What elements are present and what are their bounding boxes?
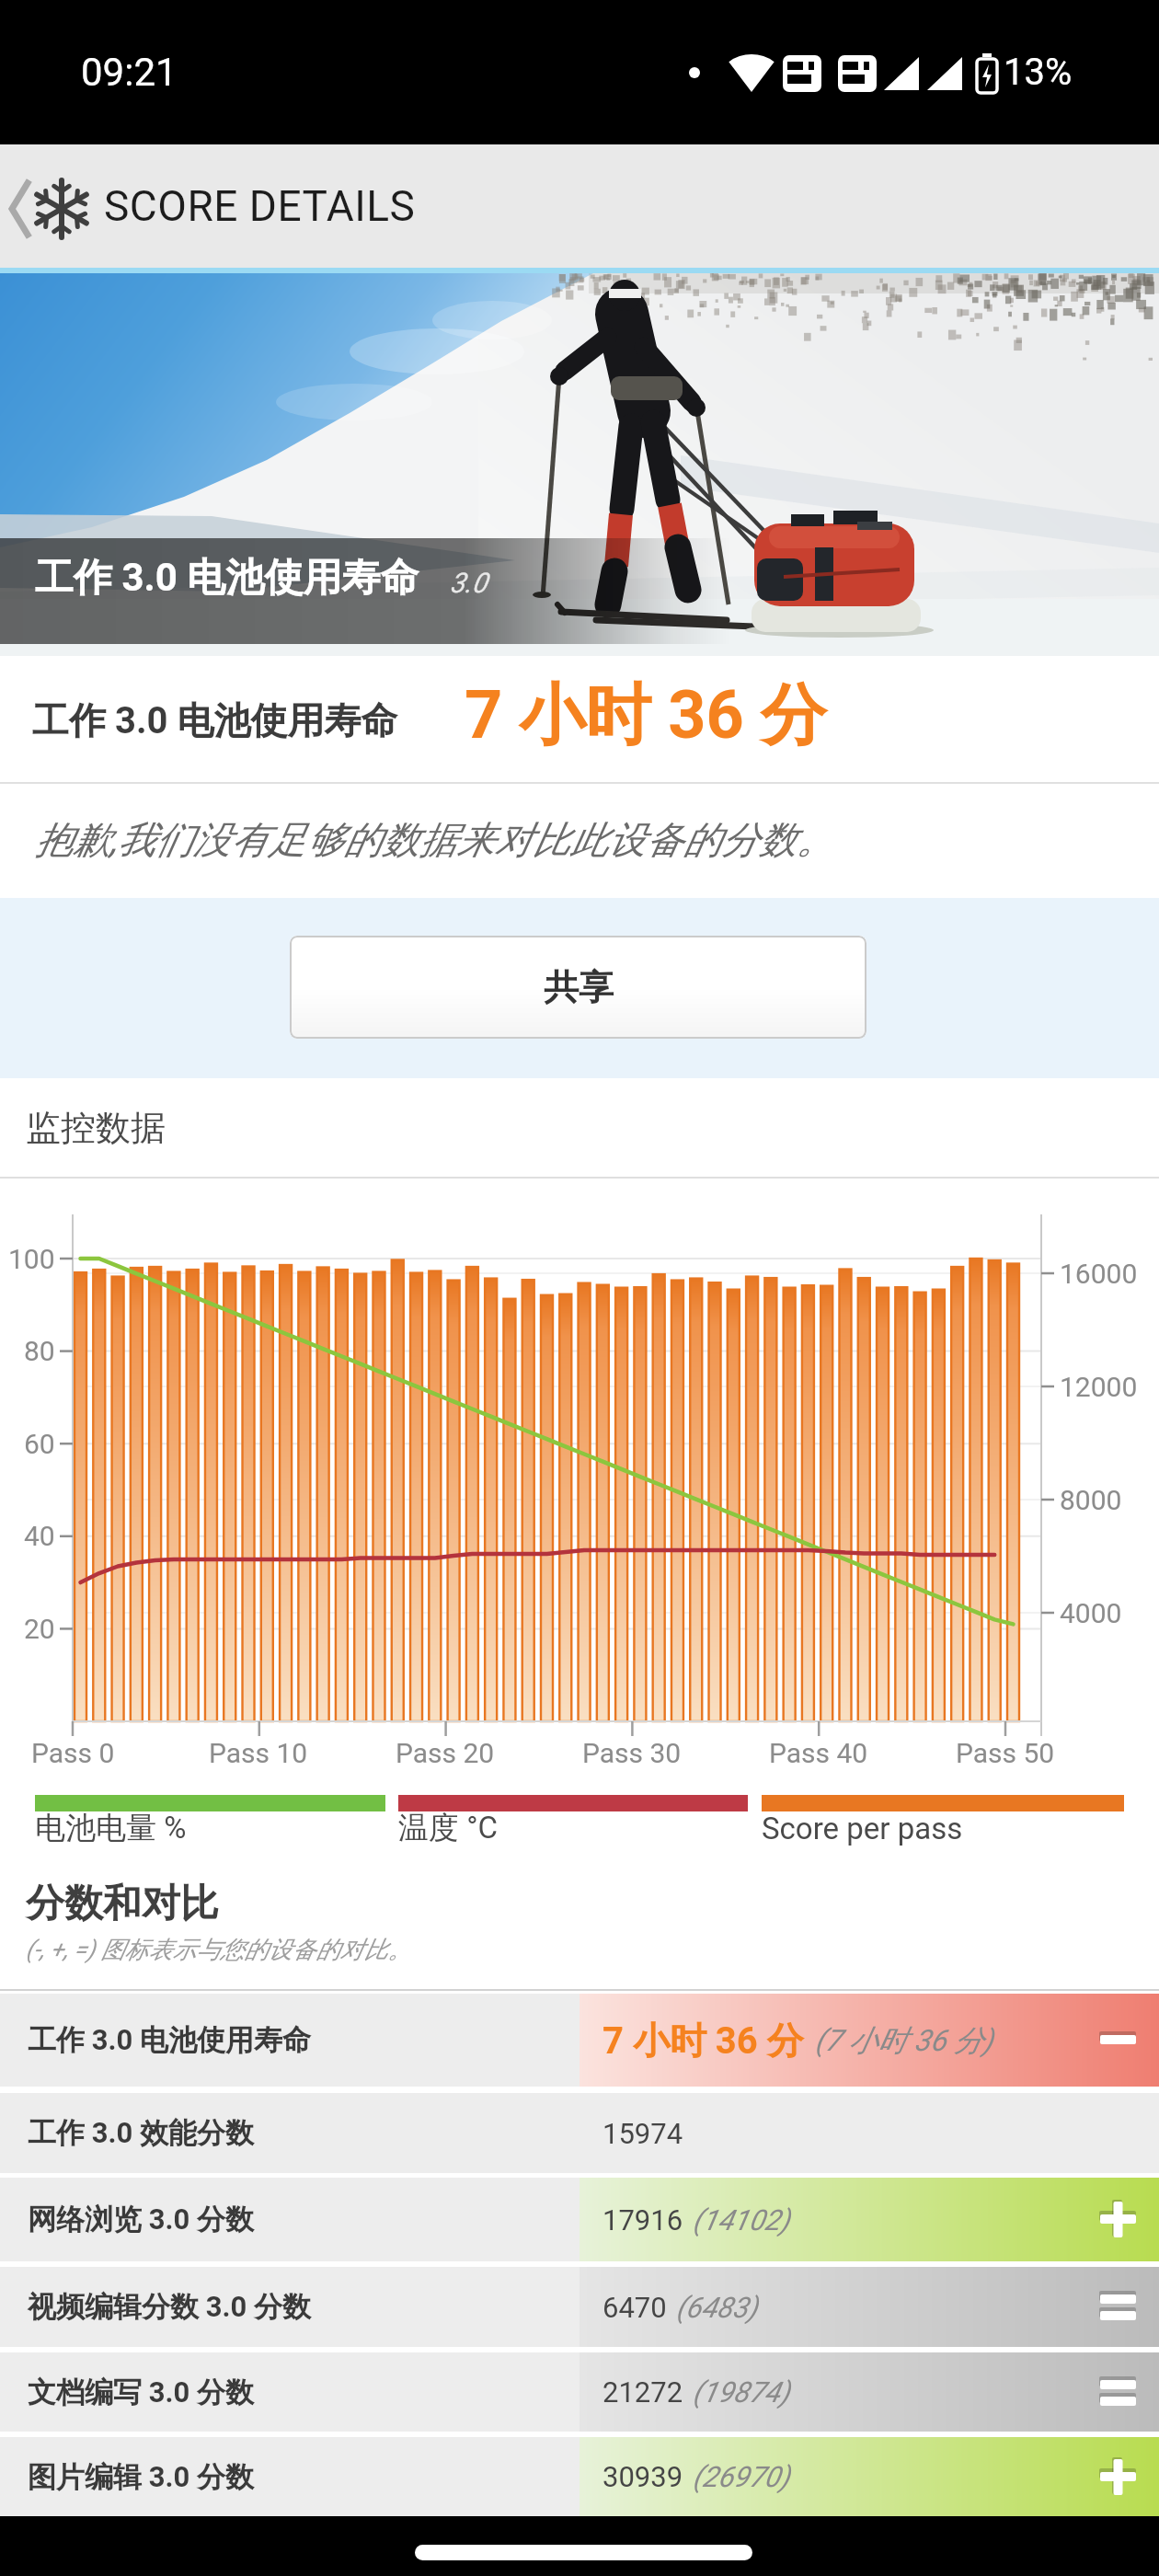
staticText: SCORE DETAILS xyxy=(104,181,416,231)
staticText: (14102) xyxy=(693,2203,790,2237)
staticText: 30939 xyxy=(602,2460,683,2493)
staticText: 40 xyxy=(24,1520,55,1552)
button[interactable] xyxy=(0,2352,1159,2432)
staticText: 80 xyxy=(24,1335,55,1367)
staticText: 视频编辑分数 3.0 分数 xyxy=(28,2289,312,2325)
staticText: 7 小时 36 分 xyxy=(465,674,827,758)
staticText: 分数和对比 xyxy=(26,1880,219,1928)
staticText: 图片编辑 3.0 分数 xyxy=(28,2459,255,2495)
staticText: 15974 xyxy=(602,2117,683,2150)
staticText: 21272 xyxy=(602,2375,683,2409)
staticText: 文档编写 3.0 分数 xyxy=(28,2375,255,2410)
staticText: Pass 20 xyxy=(396,1737,495,1769)
staticText: 工作 3.0 效能分数 xyxy=(28,2115,255,2151)
staticText: 工作 3.0 电池使用寿命 xyxy=(35,554,419,603)
staticText: 20 xyxy=(24,1613,55,1645)
button[interactable] xyxy=(0,1994,1159,2087)
staticText: 6470 xyxy=(602,2291,667,2324)
staticText: Pass 10 xyxy=(209,1737,308,1769)
staticText: 4000 xyxy=(1060,1597,1122,1629)
staticText: 电池电量 % xyxy=(35,1809,187,1847)
staticText: 温度 °C xyxy=(398,1809,498,1847)
staticText: Pass 50 xyxy=(956,1737,1055,1769)
staticText: 7 小时 36 分 xyxy=(602,2018,804,2064)
staticText: Pass 0 xyxy=(31,1737,115,1769)
staticText: Score per pass xyxy=(762,1811,963,1846)
staticText: Pass 30 xyxy=(582,1737,682,1769)
staticText: 13% xyxy=(1004,51,1073,94)
button[interactable] xyxy=(0,2437,1159,2516)
staticText: 8000 xyxy=(1060,1484,1122,1516)
staticText: (19874) xyxy=(693,2375,790,2409)
staticText: 16000 xyxy=(1060,1258,1138,1290)
staticText: 工作 3.0 电池使用寿命 xyxy=(32,697,398,743)
staticText: (26970) xyxy=(693,2460,790,2493)
staticText: 共享 xyxy=(544,965,614,1009)
staticText: 监控数据 xyxy=(26,1106,166,1150)
staticText: (6483) xyxy=(676,2291,758,2324)
button[interactable] xyxy=(0,144,101,268)
button[interactable] xyxy=(0,2267,1159,2347)
staticText: 网络浏览 3.0 分数 xyxy=(28,2202,255,2237)
staticText: (7 小时 36 分) xyxy=(815,2022,993,2059)
staticText: 09:21 xyxy=(81,50,178,95)
staticText: 3.0 xyxy=(450,567,488,599)
button[interactable] xyxy=(0,2093,1159,2173)
staticText: (-, +, =) 图标表示与您的设备的对比。 xyxy=(26,1935,412,1965)
button[interactable] xyxy=(0,2178,1159,2261)
staticText: 100 xyxy=(8,1243,55,1275)
staticText: 60 xyxy=(24,1428,55,1460)
button[interactable]: 共享 xyxy=(290,936,866,1039)
staticText: 17916 xyxy=(602,2203,683,2237)
staticText: 工作 3.0 电池使用寿命 xyxy=(28,2022,312,2058)
staticText: Pass 40 xyxy=(769,1737,868,1769)
staticText: 12000 xyxy=(1060,1371,1138,1403)
staticText: 抱歉,我们没有足够的数据来对比此设备的分数。 xyxy=(35,817,834,865)
